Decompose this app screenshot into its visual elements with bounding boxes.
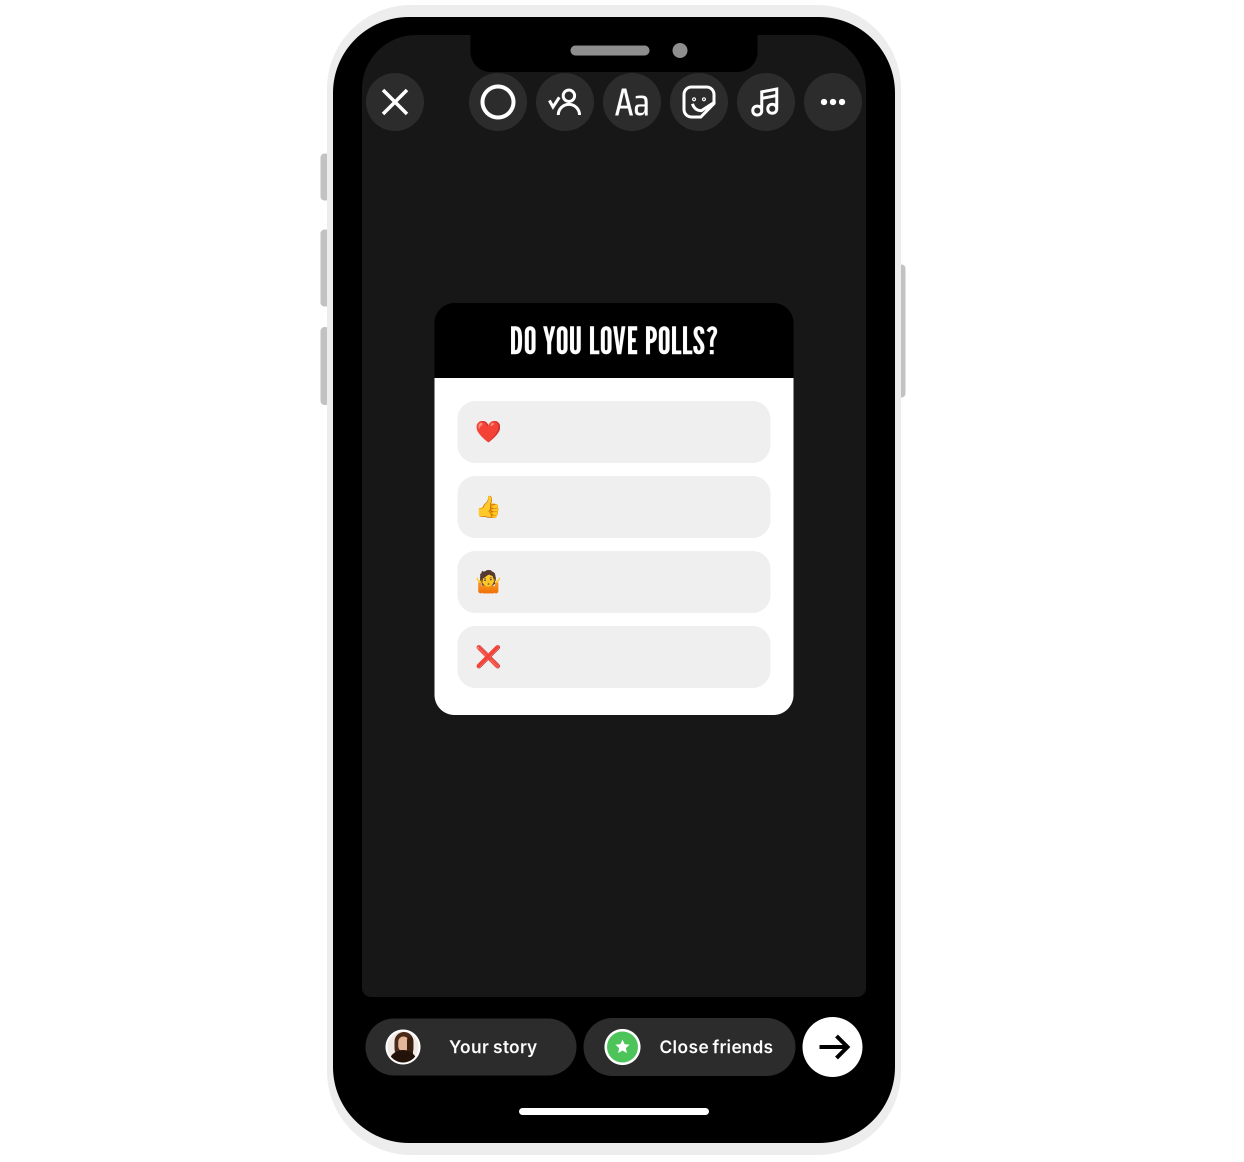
- staticText: Aa: [614, 72, 649, 132]
- staticText: 🤷: [474, 570, 501, 594]
- button[interactable]: More: [804, 73, 862, 131]
- staticText: ❤️: [474, 420, 501, 444]
- staticText: ❌: [474, 645, 501, 669]
- button[interactable]: Share: [802, 1017, 862, 1077]
- button[interactable]: Stickers: [670, 73, 728, 131]
- button[interactable]: Your story: [365, 1018, 576, 1075]
- staticText: 👍: [474, 495, 501, 519]
- button[interactable]: Close: [366, 73, 424, 131]
- button[interactable]: Close friends: [583, 1018, 795, 1076]
- staticText: DO YOU LOVE POLLS?: [509, 318, 718, 363]
- button[interactable]: Tag people: [536, 73, 594, 131]
- button[interactable]: Draw: [469, 73, 527, 131]
- staticText: Close friends: [659, 1036, 773, 1057]
- button[interactable]: Music: [737, 73, 795, 131]
- button[interactable]: Text: [603, 73, 661, 131]
- staticText: Your story: [449, 1036, 537, 1057]
